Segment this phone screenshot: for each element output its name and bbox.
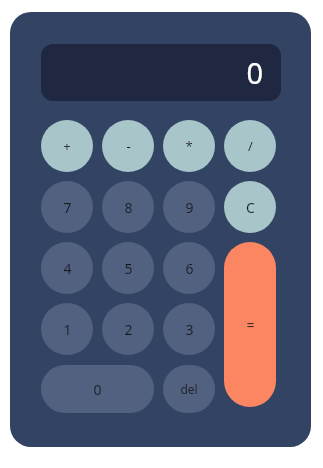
button[interactable]: 2 [102,303,154,355]
button[interactable]: 1 [41,303,93,355]
staticText: = [246,315,255,334]
button[interactable]: 8 [102,181,154,233]
button[interactable]: 5 [102,242,154,294]
button[interactable]: Equals [224,242,276,407]
staticText: 1 [63,320,72,339]
staticText: 2 [124,320,133,339]
button[interactable]: 0 [41,44,281,101]
staticText: 9 [185,198,194,217]
staticText: + [63,137,71,155]
button[interactable]: 6 [163,242,215,294]
button[interactable]: 4 [41,242,93,294]
staticText: 0 [93,380,102,399]
staticText: 5 [124,259,133,278]
button[interactable]: - [102,120,154,172]
staticText: del [180,381,198,397]
staticText: - [126,137,131,155]
button[interactable]: 7 [41,181,93,233]
staticText: / [248,137,253,155]
staticText: 7 [63,198,72,217]
button[interactable]: / [224,120,276,172]
staticText: 3 [185,320,194,339]
button[interactable]: * [163,120,215,172]
button[interactable]: C [224,181,276,233]
button[interactable]: 9 [163,181,215,233]
staticText: 0 [246,53,263,92]
button[interactable]: del [163,365,215,413]
button[interactable]: + [41,120,93,172]
button[interactable]: 0 [41,365,154,413]
staticText: 4 [63,259,72,278]
staticText: * [185,137,193,155]
staticText: C [246,198,255,217]
staticText: 8 [124,198,133,217]
button[interactable]: 3 [163,303,215,355]
staticText: 6 [185,259,194,278]
